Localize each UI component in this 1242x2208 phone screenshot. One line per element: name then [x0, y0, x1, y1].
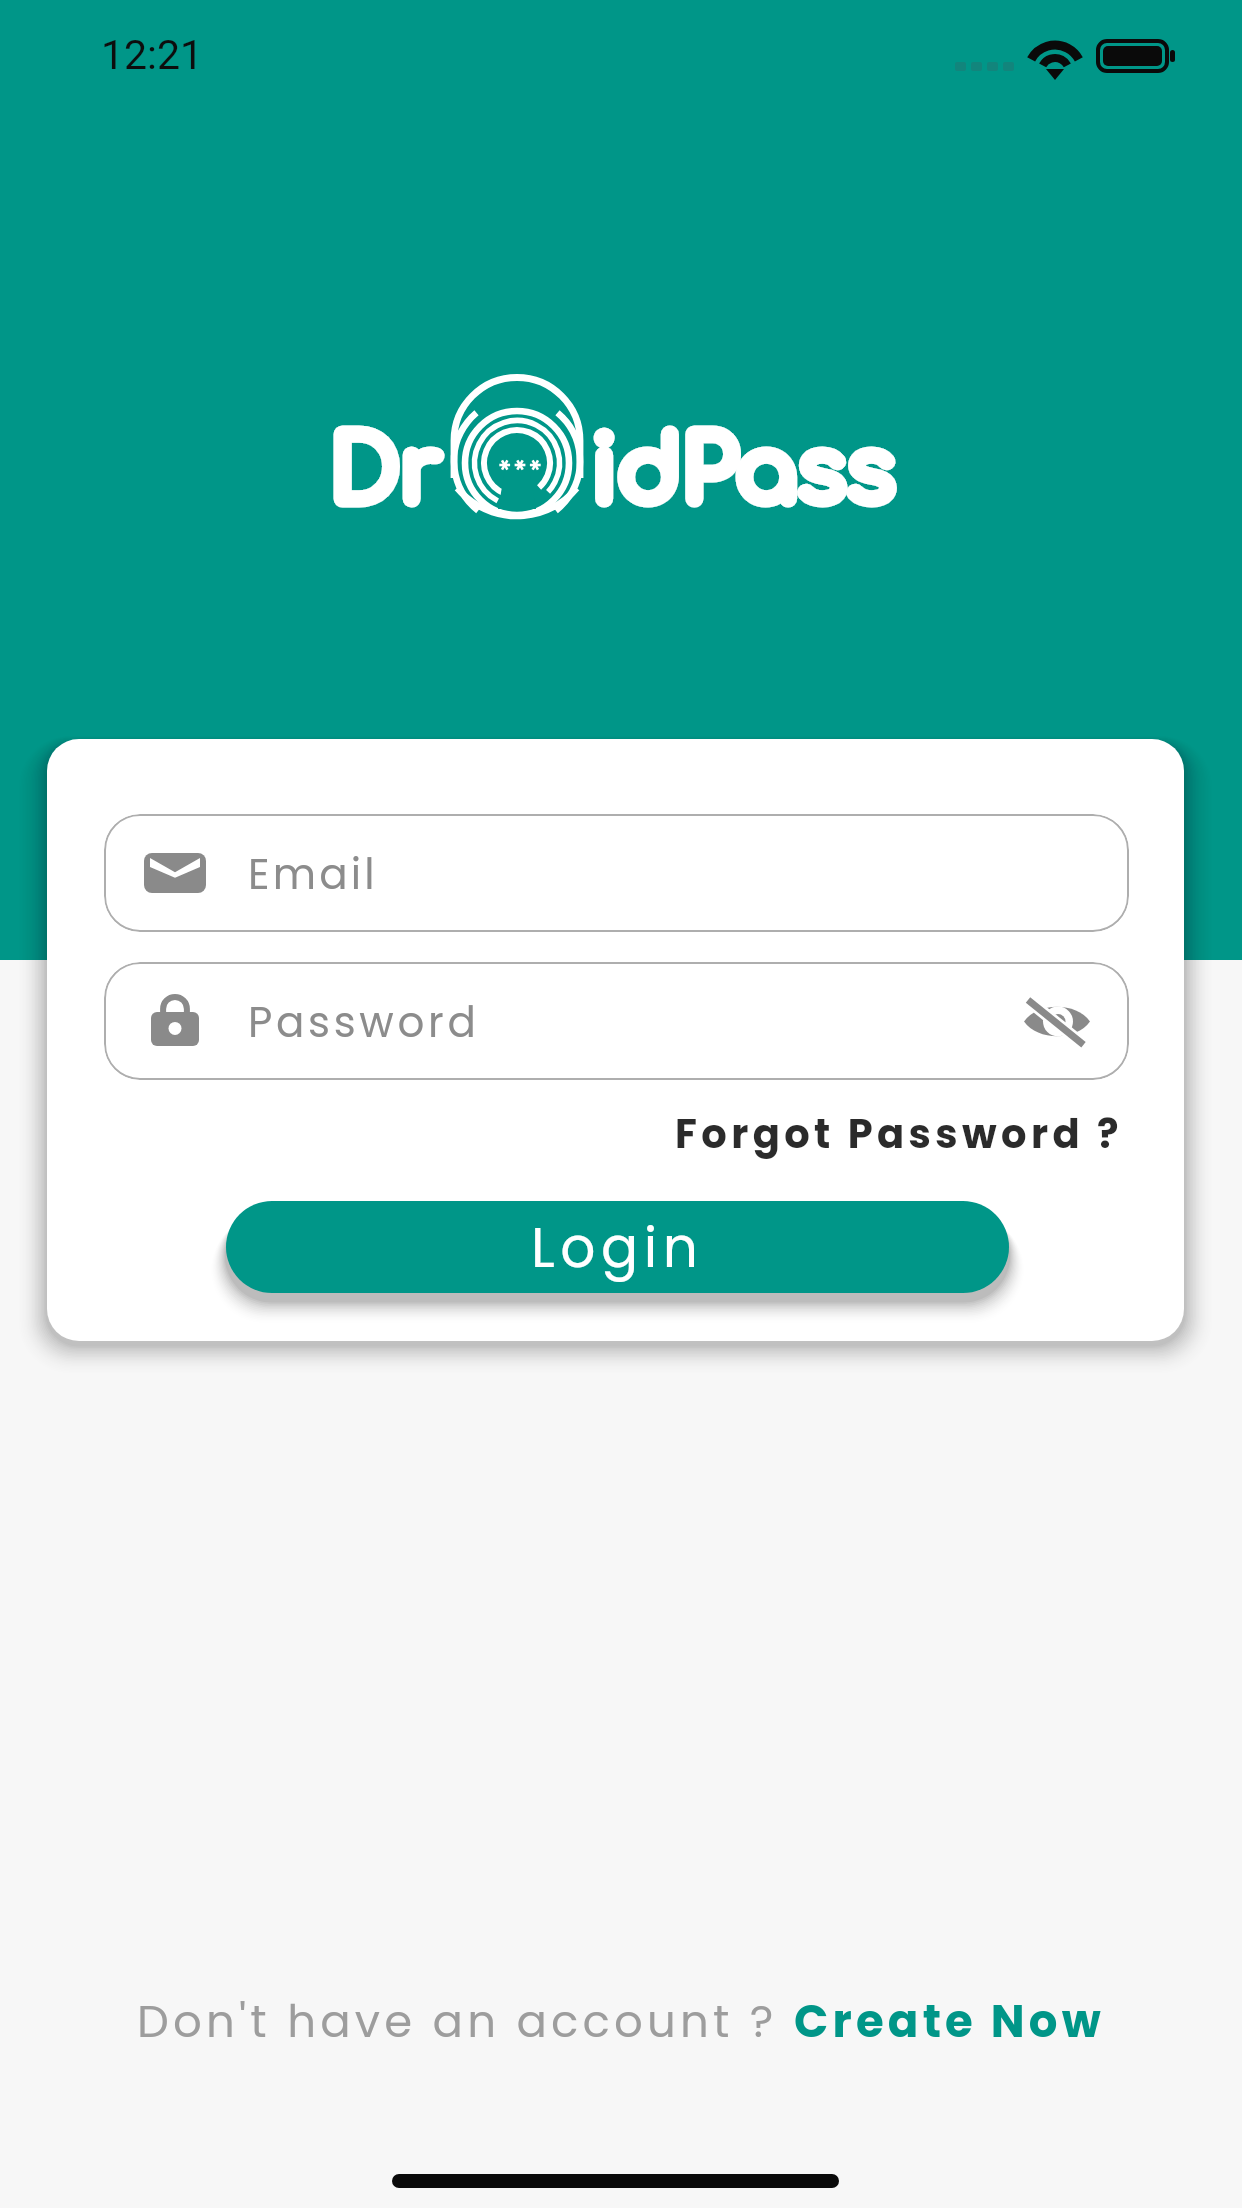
button[interactable]: Forgot Password ?: [675, 1106, 1123, 1162]
staticText: Password: [248, 993, 480, 1052]
button[interactable]: Email: [104, 814, 1129, 932]
button[interactable]: Login: [226, 1201, 1009, 1293]
staticText: 12:21: [101, 31, 204, 79]
button[interactable]: Create Now: [794, 1990, 1105, 2053]
staticText: Create Now: [794, 1990, 1105, 2053]
staticText: idPass: [591, 422, 896, 523]
staticText: Dr: [330, 422, 442, 523]
button[interactable]: Password: [104, 962, 1129, 1080]
staticText: Don't have an account ?: [137, 1990, 794, 2053]
staticText: Dr: [330, 422, 442, 523]
staticText: idPass: [591, 422, 896, 523]
button[interactable]: Toggle password visibility: [1007, 979, 1107, 1063]
staticText: Login: [531, 1209, 704, 1286]
staticText: Forgot Password ?: [675, 1106, 1123, 1162]
staticText: Email: [248, 845, 378, 904]
